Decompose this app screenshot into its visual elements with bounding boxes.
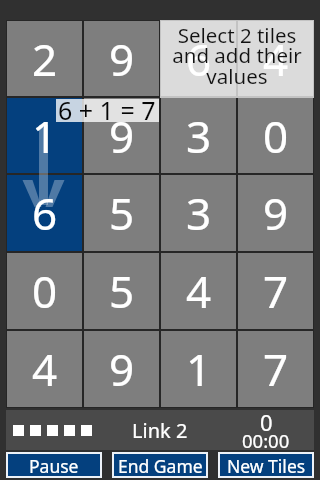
- staticText: Link 2: [132, 417, 188, 444]
- button[interactable]: 5: [84, 175, 159, 251]
- button[interactable]: 4: [161, 253, 236, 329]
- staticText: 2: [32, 29, 58, 89]
- button[interactable]: End Game: [114, 454, 206, 476]
- staticText: 6 + 1 = 7: [58, 93, 156, 127]
- button[interactable]: 9: [84, 98, 159, 173]
- staticText: 0: [32, 261, 58, 321]
- staticText: 9: [109, 29, 135, 89]
- button[interactable]: New Tiles: [220, 454, 312, 476]
- staticText: 9: [263, 183, 289, 243]
- staticText: 6: [186, 29, 212, 89]
- staticText: 4: [263, 29, 289, 89]
- staticText: 7: [263, 261, 289, 321]
- staticText: 4: [32, 339, 58, 399]
- button[interactable]: 9: [84, 21, 159, 96]
- button[interactable]: 0: [7, 253, 82, 329]
- staticText: 0: [263, 106, 289, 166]
- staticText: 4: [186, 261, 212, 321]
- staticText: 5: [109, 183, 135, 243]
- staticText: Select 2 tiles and add their values: [172, 21, 302, 90]
- staticText: 00:00: [242, 428, 290, 453]
- staticText: Pause: [29, 454, 79, 476]
- button[interactable]: 2: [7, 21, 82, 96]
- button[interactable]: Pause: [8, 454, 100, 476]
- button[interactable]: 5: [84, 253, 159, 329]
- button[interactable]: 1: [7, 98, 82, 173]
- staticText: 7: [263, 339, 289, 399]
- staticText: 6: [32, 183, 58, 243]
- button[interactable]: 6: [161, 21, 236, 96]
- button[interactable]: 3: [161, 175, 236, 251]
- staticText: 3: [186, 183, 212, 243]
- staticText: 3: [186, 106, 212, 166]
- staticText: 9: [109, 339, 135, 399]
- button[interactable]: 4: [7, 331, 82, 407]
- button[interactable]: 3: [161, 98, 236, 173]
- button[interactable]: 7: [238, 331, 313, 407]
- button[interactable]: 4: [238, 21, 313, 96]
- button[interactable]: 9: [84, 331, 159, 407]
- staticText: End Game: [118, 454, 203, 476]
- staticText: 1: [32, 106, 58, 166]
- button[interactable]: 9: [238, 175, 313, 251]
- button[interactable]: 0: [238, 98, 313, 173]
- button[interactable]: 7: [238, 253, 313, 329]
- staticText: 5: [109, 261, 135, 321]
- button[interactable]: 1: [161, 331, 236, 407]
- staticText: 0: [260, 407, 273, 437]
- staticText: New Tiles: [227, 454, 306, 476]
- button[interactable]: 6: [7, 175, 82, 251]
- staticText: 9: [109, 106, 135, 166]
- staticText: 1: [186, 339, 212, 399]
